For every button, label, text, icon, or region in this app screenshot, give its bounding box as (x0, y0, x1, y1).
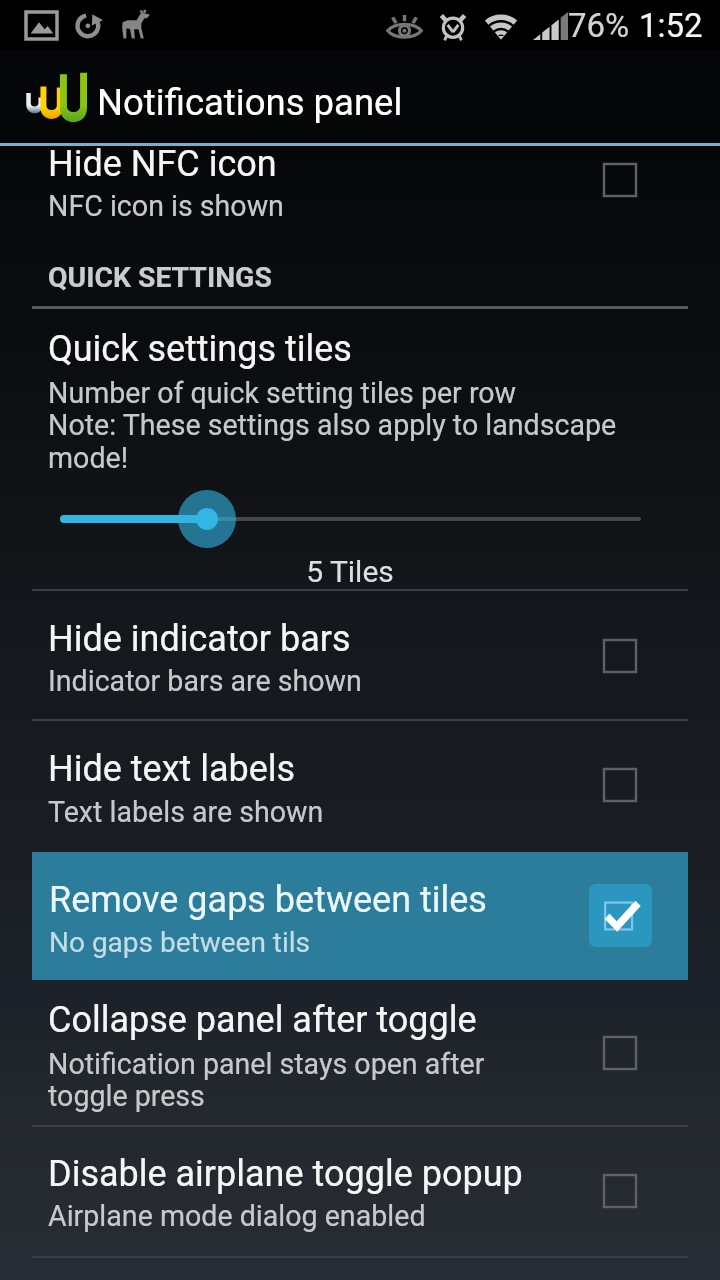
staticText: QUICK SETTINGS (48, 261, 272, 294)
staticText: Airplane mode dialog enabled (48, 1199, 426, 1233)
button[interactable]: Toggle setting (572, 622, 668, 690)
staticText: Notifications panel (97, 81, 403, 124)
button[interactable]: Toggle setting (572, 1019, 668, 1087)
staticText: Quick settings tiles (48, 328, 352, 370)
staticText: Hide indicator bars (48, 618, 351, 660)
staticText: Hide NFC icon (48, 143, 277, 185)
staticText: Disable airplane toggle popup (48, 1153, 523, 1195)
button[interactable]: Remove gaps between tiles, checked (589, 884, 652, 947)
staticText: Number of quick setting tiles per row No… (48, 376, 617, 475)
button[interactable]: Hide text labels (0, 734, 720, 830)
button[interactable]: Hide indicator bars (0, 604, 720, 700)
staticText: Collapse panel after toggle (48, 999, 477, 1041)
button[interactable]: Collapse panel after toggle (0, 985, 720, 1101)
staticText: Indicator bars are shown (48, 664, 362, 698)
button[interactable]: Toggle setting (572, 146, 668, 214)
button[interactable]: Toggle setting (572, 751, 668, 819)
button[interactable]: Number of tiles per row (0, 489, 720, 549)
staticText: Text labels are shown (48, 795, 324, 829)
staticText: Hide text labels (48, 748, 296, 790)
staticText: Remove gaps between tiles (49, 879, 487, 921)
staticText: No gaps between tils (49, 926, 311, 959)
button[interactable]: Hide NFC icon (0, 129, 720, 225)
staticText: Notification panel stays open after togg… (48, 1047, 485, 1113)
staticText: 5 Tiles (0, 554, 710, 589)
staticText: 76% (568, 6, 630, 45)
button[interactable]: Disable airplane toggle popup (0, 1139, 720, 1235)
button[interactable]: Remove gaps between tiles (32, 852, 688, 980)
staticText: 1:52 (639, 6, 703, 45)
button[interactable]: Toggle setting (572, 1157, 668, 1225)
staticText: NFC icon is shown (48, 189, 284, 223)
